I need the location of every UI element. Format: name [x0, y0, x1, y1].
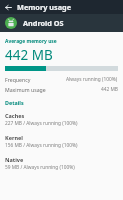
- staticText: Frequency: [5, 76, 31, 83]
- staticText: Memory usage: [17, 2, 71, 12]
- staticText: Maximum usage: [5, 86, 46, 93]
- staticText: 442 MB: [101, 86, 118, 93]
- button[interactable]: Kernel: [5, 134, 118, 149]
- staticText: Details: [5, 99, 24, 106]
- staticText: Native: [5, 156, 24, 163]
- staticText: Android OS: [23, 18, 64, 28]
- button[interactable]: Android OS: [0, 14, 123, 32]
- staticText: Caches: [5, 112, 25, 119]
- staticText: Average memory use: [5, 38, 57, 45]
- staticText: 156 MB / Always running (100%): [5, 142, 78, 149]
- button[interactable]: Maximum usage: [5, 86, 118, 93]
- button[interactable]: Caches: [5, 112, 118, 127]
- staticText: 227 MB / Always running (100%): [5, 120, 78, 127]
- staticText: Always running (100%): [66, 76, 118, 83]
- button[interactable]: Frequency: [5, 76, 118, 83]
- button[interactable]: Native: [5, 156, 118, 171]
- staticText: Kernel: [5, 134, 23, 141]
- staticText: 59 MB / Always running (100%): [5, 164, 75, 171]
- button[interactable]: Back: [0, 0, 17, 14]
- staticText: 442 MB: [5, 46, 53, 64]
